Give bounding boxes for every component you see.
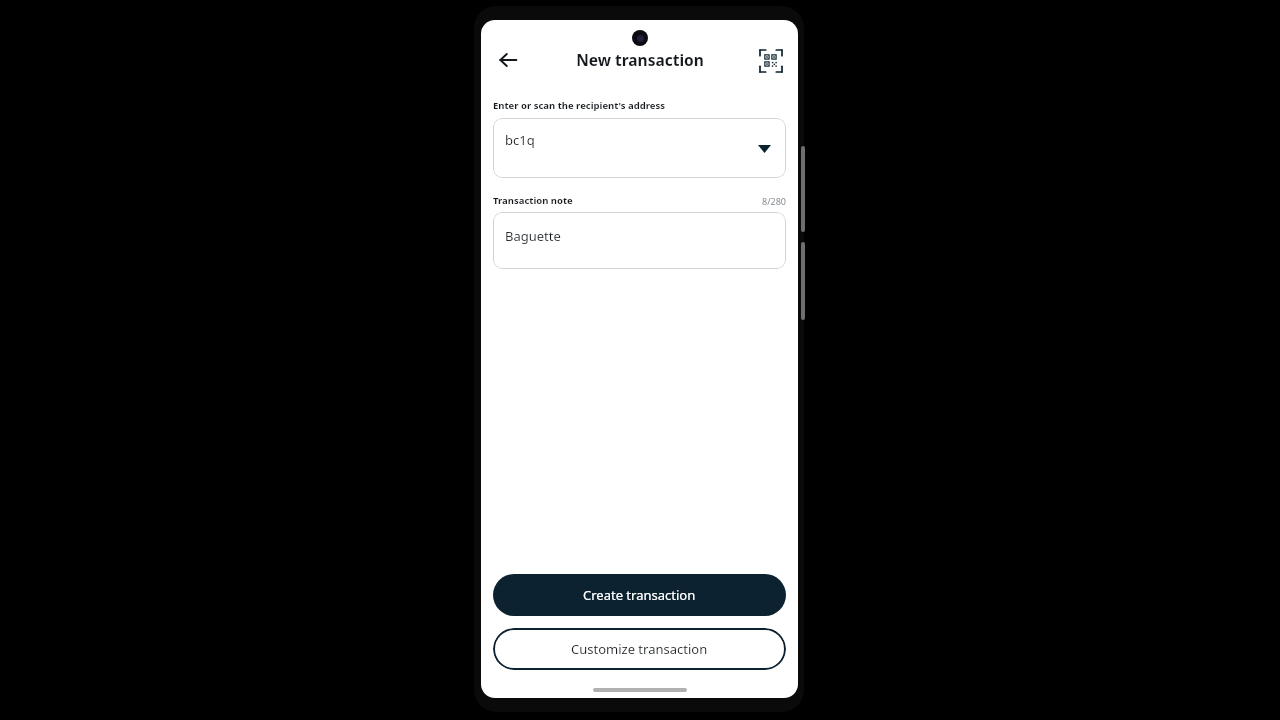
staticText: Create transaction xyxy=(583,586,696,604)
button[interactable]: bc1q xyxy=(493,118,786,178)
button[interactable]: Scan QR code xyxy=(754,44,788,78)
staticText: New transaction xyxy=(576,49,704,70)
staticText: Transaction note xyxy=(493,194,573,207)
staticText: bc1q xyxy=(505,131,535,149)
button[interactable]: Baguette xyxy=(493,212,786,269)
staticText: 8/280 xyxy=(762,195,786,207)
staticText: Baguette xyxy=(505,227,561,245)
staticText: Enter or scan the recipient's address xyxy=(493,99,666,112)
staticText: Customize transaction xyxy=(571,640,708,658)
button[interactable]: Create transaction xyxy=(493,574,786,616)
button[interactable]: Back xyxy=(490,42,526,78)
button[interactable]: Customize transaction xyxy=(493,628,786,670)
